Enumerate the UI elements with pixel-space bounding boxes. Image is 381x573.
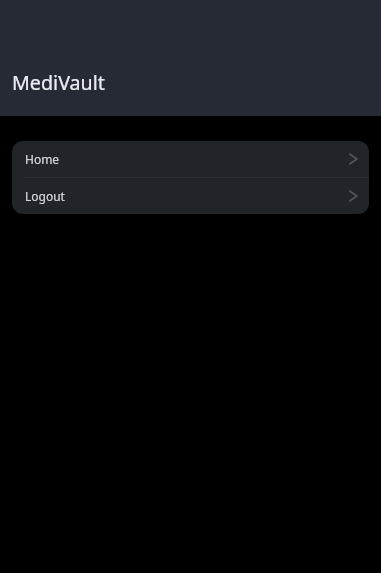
staticText: MediVault bbox=[12, 69, 105, 96]
staticText: Home bbox=[25, 151, 60, 167]
other: Open Home bbox=[347, 153, 359, 165]
other: Open Logout bbox=[347, 190, 359, 202]
button[interactable]: Home bbox=[12, 141, 369, 177]
staticText: Logout bbox=[25, 188, 65, 204]
button[interactable]: Logout bbox=[12, 178, 369, 214]
